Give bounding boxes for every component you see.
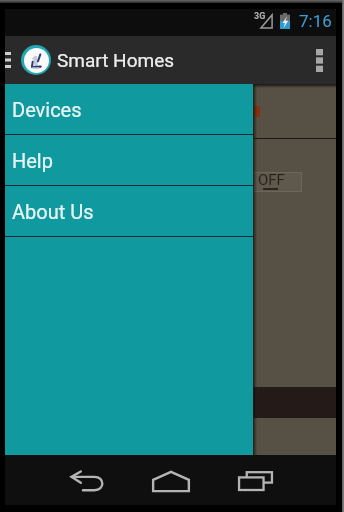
staticText: About Us xyxy=(12,200,94,223)
staticText: Help xyxy=(12,149,53,172)
staticText: Devices xyxy=(12,98,82,121)
button[interactable]: More options xyxy=(303,36,335,84)
button[interactable]: Recent apps xyxy=(231,462,279,500)
staticText: Smart Homes xyxy=(57,49,175,71)
button[interactable]: Home xyxy=(147,462,195,500)
staticText: 3G xyxy=(254,11,266,22)
button[interactable]: Back xyxy=(63,462,113,500)
button[interactable]: Open navigation drawer xyxy=(5,36,21,84)
staticText: OFF xyxy=(258,171,285,189)
staticText: 7:16 xyxy=(299,11,332,31)
button[interactable]: About Us xyxy=(5,186,253,236)
button[interactable]: Help xyxy=(5,135,253,185)
button[interactable]: Devices xyxy=(5,84,253,134)
